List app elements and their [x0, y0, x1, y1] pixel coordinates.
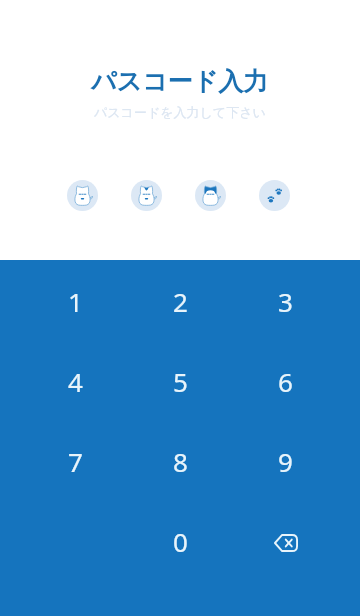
staticText: 5 — [173, 364, 188, 399]
button[interactable]: 7 — [22, 421, 128, 501]
staticText: 6 — [278, 364, 293, 399]
staticText: 0 — [173, 524, 188, 559]
staticText: 8 — [173, 444, 188, 479]
staticText: パスコード入力 — [91, 66, 269, 97]
button[interactable]: 8 — [128, 421, 233, 501]
staticText: 2 — [173, 284, 188, 319]
button[interactable]: 6 — [233, 341, 338, 421]
button[interactable]: 4 — [22, 341, 128, 421]
button[interactable]: 0 — [128, 501, 233, 581]
staticText: 1 — [68, 284, 83, 319]
button[interactable]: 5 — [128, 341, 233, 421]
other: Backspace — [262, 517, 310, 565]
staticText: 4 — [68, 364, 83, 399]
button[interactable]: 1 — [22, 261, 128, 341]
button[interactable]: 2 — [128, 261, 233, 341]
staticText: 7 — [68, 444, 83, 479]
button[interactable]: 3 — [233, 261, 338, 341]
staticText: 9 — [278, 444, 293, 479]
button[interactable]: 9 — [233, 421, 338, 501]
staticText: パスコードを入力して下さい — [94, 104, 266, 120]
staticText: 3 — [278, 284, 293, 319]
button[interactable]: Backspace — [233, 501, 338, 581]
